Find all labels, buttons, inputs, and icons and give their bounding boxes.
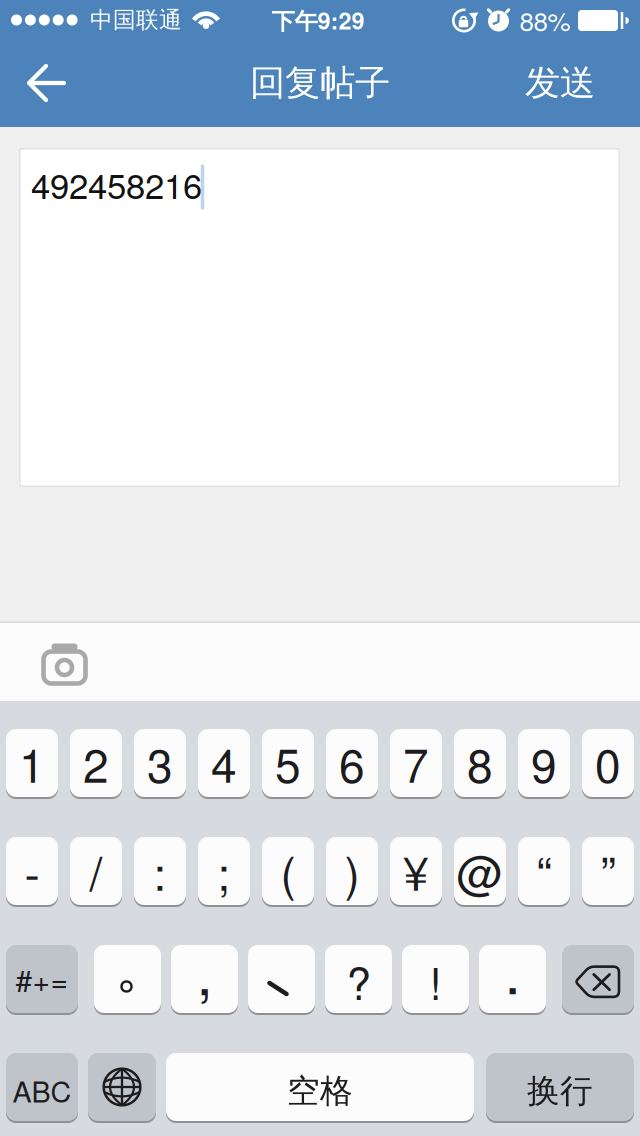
- button[interactable]: 换行: [486, 1053, 634, 1121]
- button[interactable]: @: [454, 837, 506, 905]
- button[interactable]: 9: [518, 729, 570, 797]
- button[interactable]: 0: [582, 729, 634, 797]
- staticText: /: [89, 838, 102, 904]
- staticText: 发送: [525, 61, 595, 105]
- button[interactable]: Back: [9, 40, 85, 126]
- staticText: 3: [147, 730, 173, 796]
- staticText: ): [344, 838, 359, 904]
- button[interactable]: /: [70, 837, 122, 905]
- staticText: .: [504, 927, 520, 1011]
- button[interactable]: ?: [325, 945, 392, 1013]
- staticText: ,: [196, 928, 212, 1012]
- button[interactable]: ”: [582, 837, 634, 905]
- button[interactable]: Next keyboard: [88, 1053, 156, 1121]
- button[interactable]: 7: [390, 729, 442, 797]
- staticText: 空格: [287, 1070, 353, 1112]
- staticText: ”: [600, 838, 615, 904]
- button[interactable]: ;: [198, 837, 250, 905]
- staticText: 0: [595, 730, 621, 796]
- staticText: 4: [211, 730, 237, 796]
- staticText: 88%: [519, 1, 570, 39]
- staticText: 7: [403, 730, 429, 796]
- button[interactable]: ABC: [6, 1053, 78, 1121]
- staticText: 1: [19, 730, 45, 796]
- button[interactable]: 1: [6, 729, 58, 797]
- button[interactable]: 空格: [166, 1053, 474, 1121]
- staticText: 中国联通: [90, 6, 182, 34]
- staticText: (: [280, 838, 295, 904]
- button[interactable]: !: [402, 945, 469, 1013]
- button[interactable]: “: [518, 837, 570, 905]
- button[interactable]: ¥: [390, 837, 442, 905]
- staticText: 5: [275, 730, 301, 796]
- staticText: ;: [217, 838, 230, 904]
- button[interactable]: ): [326, 837, 378, 905]
- staticText: #+=: [15, 957, 68, 1000]
- staticText: 6: [339, 730, 365, 796]
- button[interactable]: 6: [326, 729, 378, 797]
- button[interactable]: :: [134, 837, 186, 905]
- button[interactable]: 5: [262, 729, 314, 797]
- button[interactable]: Enumeration comma: [248, 945, 315, 1013]
- button[interactable]: 8: [454, 729, 506, 797]
- button[interactable]: 发送: [505, 40, 615, 126]
- staticText: @: [456, 838, 503, 904]
- staticText: 492458216: [31, 159, 202, 209]
- staticText: 2: [83, 730, 109, 796]
- staticText: 换行: [527, 1070, 593, 1112]
- button[interactable]: ,: [171, 945, 238, 1013]
- staticText: :: [153, 838, 166, 904]
- button[interactable]: 2: [70, 729, 122, 797]
- staticText: !: [429, 949, 441, 1012]
- button[interactable]: Insert photo: [36, 636, 92, 692]
- staticText: “: [536, 838, 551, 904]
- staticText: ?: [346, 949, 370, 1012]
- staticText: ABC: [12, 1069, 71, 1111]
- button[interactable]: (: [262, 837, 314, 905]
- button[interactable]: #+=: [6, 945, 78, 1013]
- button[interactable]: -: [6, 837, 58, 905]
- button[interactable]: 4: [198, 729, 250, 797]
- button[interactable]: .: [479, 945, 546, 1013]
- staticText: ¥: [403, 838, 429, 904]
- staticText: 8: [467, 730, 493, 796]
- staticText: -: [24, 838, 39, 904]
- button[interactable]: 3: [134, 729, 186, 797]
- staticText: 9: [531, 730, 557, 796]
- button[interactable]: Delete: [562, 945, 634, 1013]
- staticText: 下午9:29: [271, 3, 364, 37]
- button[interactable]: Ideographic full stop: [94, 945, 161, 1013]
- staticText: 回复帖子: [250, 61, 390, 105]
